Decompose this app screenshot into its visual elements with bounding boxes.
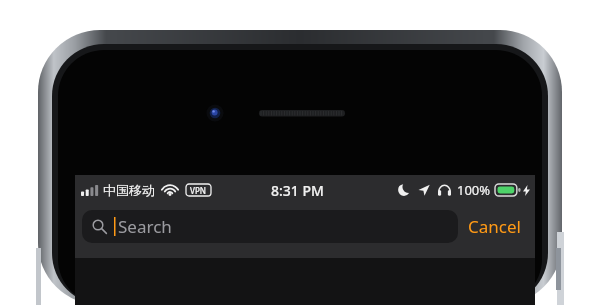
staticText: VPN <box>190 185 207 196</box>
staticText: Search <box>118 215 172 238</box>
other: Charging <box>523 185 530 196</box>
other: Headphones <box>438 184 451 197</box>
other: Do Not Disturb <box>398 184 410 196</box>
other: Cellular signal <box>81 185 98 196</box>
other: Wi-Fi <box>162 184 178 196</box>
staticText: 100% <box>457 181 491 199</box>
staticText: 8:31 PM <box>271 181 324 200</box>
button[interactable]: Cancel <box>458 210 531 243</box>
staticText: Cancel <box>468 215 521 238</box>
other: Location <box>418 184 430 196</box>
other: Battery full <box>495 184 521 196</box>
button[interactable]: Search <box>82 210 458 243</box>
staticText: 中国移动 <box>103 182 155 198</box>
